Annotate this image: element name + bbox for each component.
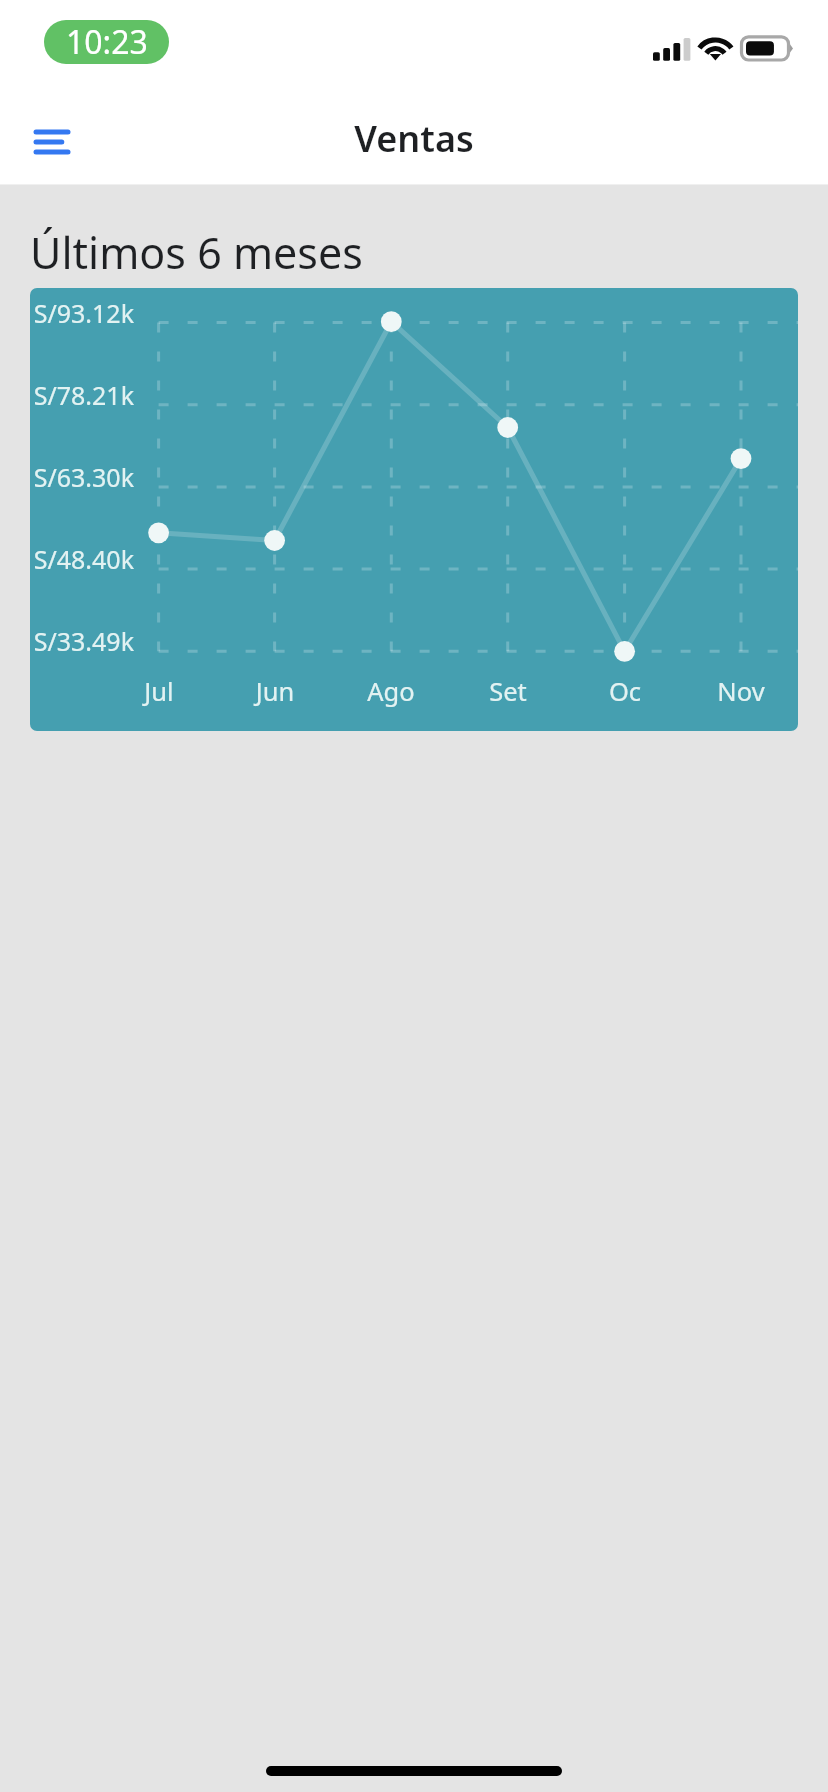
staticText: S/33.49k	[30, 624, 134, 658]
staticText: S/48.40k	[30, 542, 134, 576]
staticText: Jun	[225, 674, 325, 709]
staticText: Ago	[341, 674, 441, 709]
staticText: Oc	[575, 674, 675, 709]
staticText: S/63.30k	[30, 460, 134, 494]
staticText: 10:23	[66, 20, 148, 64]
button[interactable]: S/93.12k	[30, 288, 798, 731]
button[interactable]: Open navigation menu	[18, 108, 86, 176]
staticText: Nov	[691, 674, 791, 709]
staticText: S/93.12k	[30, 296, 134, 330]
staticText: Ventas	[354, 114, 474, 163]
staticText: Set	[458, 674, 558, 709]
staticText: Jul	[109, 674, 209, 709]
staticText: Últimos 6 meses	[30, 223, 363, 282]
staticText: S/78.21k	[30, 378, 134, 412]
